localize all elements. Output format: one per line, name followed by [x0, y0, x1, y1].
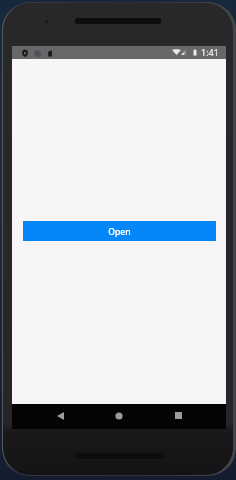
- button[interactable]: Recents: [160, 403, 196, 428]
- staticText: Open: [108, 226, 131, 238]
- staticText: 1:41: [201, 46, 219, 58]
- button[interactable]: Home: [101, 403, 137, 428]
- button[interactable]: Back: [42, 403, 78, 428]
- button[interactable]: Open: [23, 221, 216, 241]
